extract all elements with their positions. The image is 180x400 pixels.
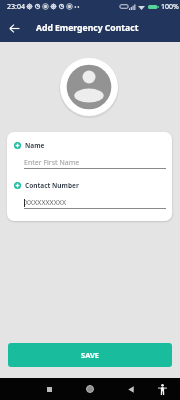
button[interactable]: XXXXXXXXXX (24, 198, 166, 209)
button[interactable]: Enter First Name (24, 158, 166, 169)
staticText: XXXXXXXXXX (25, 198, 67, 208)
staticText: Contact Number (25, 181, 79, 190)
button[interactable]: Back (120, 378, 142, 400)
staticText: 100% (161, 2, 179, 12)
staticText: SAVE (81, 350, 99, 360)
staticText: Add Emergency Contact (36, 22, 139, 34)
staticText: Name (25, 141, 45, 150)
button[interactable]: Back (0, 14, 28, 42)
staticText: 23:04 (7, 2, 25, 12)
button[interactable]: Accessibility (151, 378, 173, 400)
staticText: Enter First Name (24, 158, 80, 168)
button[interactable]: SAVE (8, 343, 172, 367)
button[interactable]: Home (79, 378, 101, 400)
button[interactable]: Recents (38, 378, 60, 400)
